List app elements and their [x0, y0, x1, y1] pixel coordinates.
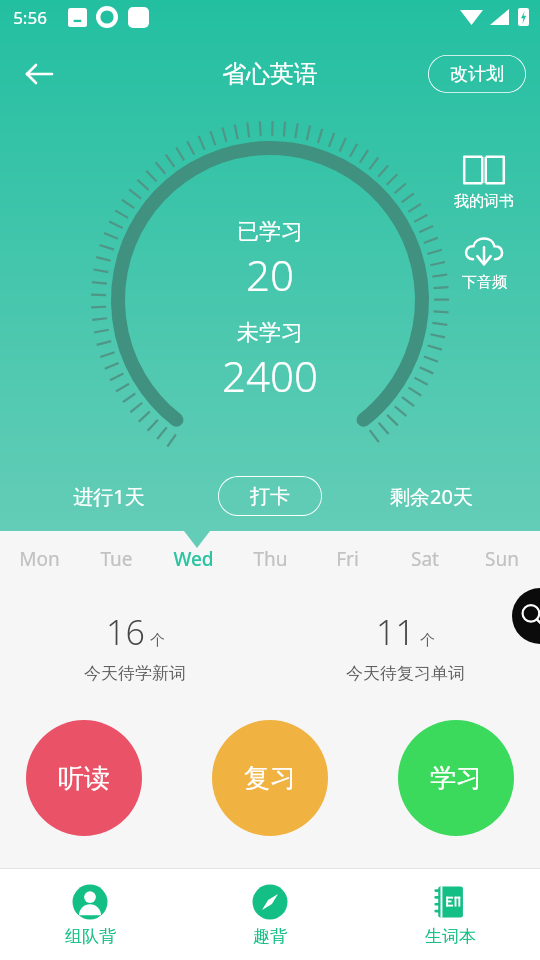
- button[interactable]: 趣背: [180, 869, 360, 960]
- staticText: 剩余20天: [390, 483, 473, 510]
- button[interactable]: 进行1天: [0, 461, 218, 531]
- button[interactable]: Back: [12, 47, 66, 101]
- staticText: 11: [376, 609, 415, 655]
- staticText: 20: [246, 246, 294, 303]
- staticText: 复习: [244, 762, 296, 795]
- staticText: 个: [420, 631, 435, 650]
- staticText: 组队背: [65, 926, 116, 947]
- staticText: 打卡: [250, 484, 290, 509]
- staticText: 进行1天: [73, 483, 145, 510]
- staticText: 今天待复习单词: [346, 663, 465, 684]
- button[interactable]: Sat: [386, 531, 463, 587]
- button[interactable]: 16: [0, 609, 270, 684]
- button[interactable]: 听读: [26, 720, 142, 836]
- staticText: 个: [150, 631, 165, 650]
- staticText: Thu: [253, 546, 288, 572]
- staticText: 5:56: [13, 6, 47, 29]
- staticText: 未学习: [237, 319, 303, 347]
- button[interactable]: 剩余20天: [322, 461, 540, 531]
- button[interactable]: Wed: [155, 531, 232, 587]
- button[interactable]: Fri: [309, 531, 386, 587]
- button[interactable]: 生词本: [360, 869, 540, 960]
- button[interactable]: 我的词书: [438, 152, 530, 211]
- button[interactable]: Mon: [0, 531, 78, 587]
- button[interactable]: Tue: [78, 531, 155, 587]
- button[interactable]: 打卡: [218, 476, 322, 516]
- staticText: 趣背: [253, 926, 287, 947]
- button[interactable]: 下音频: [438, 235, 530, 292]
- staticText: 改计划: [450, 63, 504, 86]
- button[interactable]: 学习: [398, 720, 514, 836]
- staticText: Wed: [173, 546, 214, 572]
- staticText: 听读: [58, 762, 110, 795]
- button[interactable]: 11: [270, 609, 540, 684]
- staticText: Mon: [19, 546, 60, 572]
- staticText: 生词本: [425, 926, 476, 947]
- staticText: 今天待学新词: [84, 663, 186, 684]
- button[interactable]: Thu: [232, 531, 309, 587]
- staticText: Sun: [485, 546, 519, 572]
- button[interactable]: 组队背: [0, 869, 180, 960]
- staticText: Tue: [100, 546, 133, 572]
- button[interactable]: Search: [512, 588, 540, 644]
- staticText: 省心英语: [222, 59, 318, 89]
- staticText: 我的词书: [454, 192, 514, 211]
- staticText: Fri: [336, 546, 359, 572]
- button[interactable]: 改计划: [428, 55, 526, 93]
- staticText: Sat: [411, 546, 439, 572]
- staticText: 2400: [222, 347, 318, 404]
- staticText: 已学习: [237, 218, 303, 246]
- staticText: 下音频: [462, 273, 507, 292]
- button[interactable]: Sun: [463, 531, 540, 587]
- staticText: 16: [106, 609, 145, 655]
- staticText: 学习: [430, 762, 482, 795]
- button[interactable]: 复习: [212, 720, 328, 836]
